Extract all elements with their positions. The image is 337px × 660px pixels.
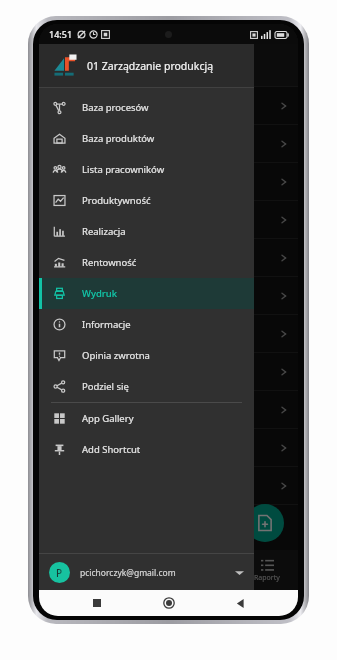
button[interactable]: Informacje <box>39 309 254 340</box>
button[interactable] <box>39 353 298 391</box>
button[interactable] <box>39 239 298 277</box>
button[interactable]: Baza produktów <box>39 123 254 154</box>
button[interactable]: P <box>39 554 254 590</box>
staticText: Opinia zwrotna <box>82 349 150 362</box>
button[interactable] <box>39 391 298 429</box>
button[interactable]: App Gallery <box>39 403 254 434</box>
button[interactable]: Baza procesów <box>39 92 254 123</box>
button[interactable]: Lista pracowników <box>39 154 254 185</box>
staticText: Baza produktów <box>82 132 155 145</box>
staticText: Baza procesów <box>82 101 149 114</box>
staticText: Lista pracowników <box>82 163 165 176</box>
staticText: Add Shortcut <box>82 443 141 456</box>
button[interactable]: Realizacja <box>39 216 254 247</box>
button[interactable]: Wydruk <box>39 278 254 309</box>
staticText: Raporty <box>254 573 280 583</box>
button[interactable]: Rentowność <box>39 247 254 278</box>
button[interactable] <box>39 125 298 163</box>
button[interactable] <box>39 163 298 201</box>
button[interactable] <box>39 315 298 353</box>
button[interactable] <box>39 277 298 315</box>
button[interactable] <box>39 201 298 239</box>
staticText: Informacje <box>82 318 131 331</box>
staticText: P <box>56 566 63 580</box>
staticText: pcichorczyk@gmail.com <box>80 567 235 579</box>
button[interactable]: Add report <box>246 504 284 542</box>
button[interactable] <box>39 467 298 505</box>
staticText: Realizacja <box>82 225 126 238</box>
button[interactable]: Back <box>227 590 253 616</box>
button[interactable]: Podziel się <box>39 371 254 402</box>
button[interactable]: Add Shortcut <box>39 434 254 465</box>
button[interactable]: Recent apps <box>84 590 110 616</box>
staticText: App Gallery <box>82 412 134 425</box>
button[interactable]: Opinia zwrotna <box>39 340 254 371</box>
button[interactable] <box>39 429 298 467</box>
staticText: Produktywność <box>82 194 151 207</box>
button[interactable]: 01 Zarządzanie produkcją <box>39 44 254 87</box>
staticText: 01 Zarządzanie produkcją <box>87 59 214 73</box>
button[interactable]: Produktywność <box>39 185 254 216</box>
staticText: 14:51 <box>49 28 73 40</box>
staticText: Wydruk <box>82 287 118 300</box>
staticText: Rentowność <box>82 256 137 269</box>
button[interactable]: Home <box>156 590 182 616</box>
button[interactable] <box>39 87 298 125</box>
staticText: Podziel się <box>82 380 129 393</box>
